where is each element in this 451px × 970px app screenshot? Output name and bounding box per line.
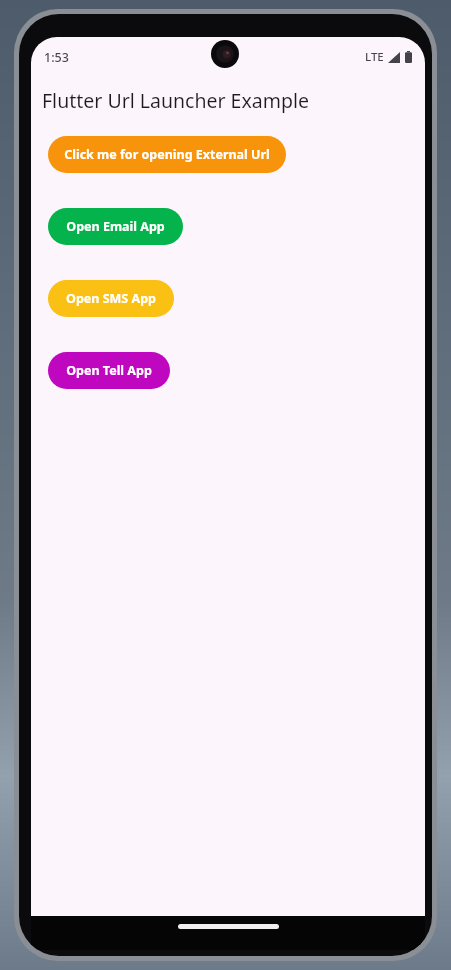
button[interactable]: Click me for opening External Url [48,136,286,173]
staticText: Open SMS App [66,290,156,307]
button[interactable]: Open Email App [48,208,183,245]
staticText: Click me for opening External Url [64,146,270,163]
staticText: Flutter Url Launcher Example [42,87,309,114]
staticText: Open Email App [66,218,165,235]
staticText: LTE [365,49,384,65]
button[interactable]: Open Tell App [48,352,170,389]
button[interactable]: Open SMS App [48,280,174,317]
staticText: Open Tell App [66,362,152,379]
staticText: 1:53 [44,49,69,66]
